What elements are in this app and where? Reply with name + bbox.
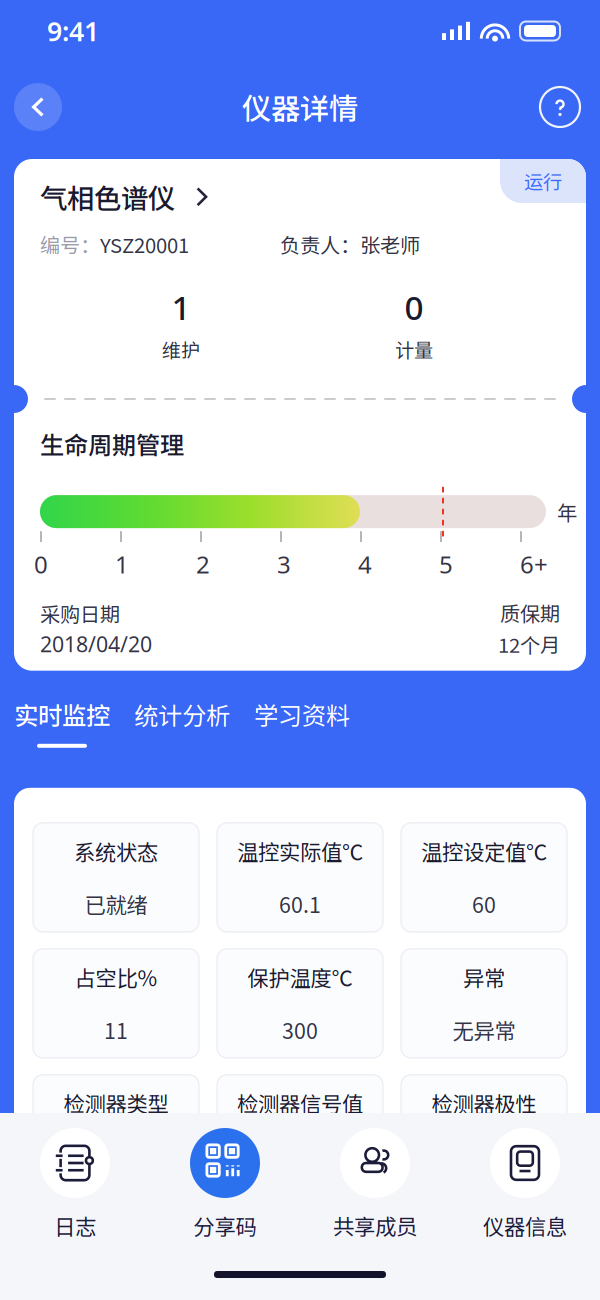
staticText: 占空比% [74, 961, 157, 992]
button[interactable]: 实时监控 [14, 697, 110, 748]
staticText: 仪器信息 [483, 1210, 567, 1241]
staticText: 系统状态 [74, 835, 158, 866]
staticText: 检测器极性 [431, 1087, 536, 1118]
staticText: 张老师 [360, 230, 420, 259]
button[interactable]: Help [538, 85, 582, 129]
staticText: 11 [104, 1014, 128, 1045]
staticText: 无异常 [452, 1014, 515, 1045]
staticText: 检测器类型 [63, 1087, 168, 1118]
button[interactable]: 日志 [0, 1128, 150, 1241]
button[interactable]: 共享成员 [300, 1128, 450, 1241]
staticText: 0 [34, 548, 48, 580]
staticText: 实时监控 [14, 697, 110, 732]
staticText: 统计分析 [134, 697, 230, 732]
staticText: 共享成员 [333, 1210, 417, 1241]
staticText: FID [99, 1140, 132, 1171]
button[interactable]: 气相色谱仪 [14, 177, 586, 217]
staticText: 温控实际值℃ [237, 835, 363, 866]
staticText: 运行 [524, 167, 562, 195]
staticText: 6+ [520, 548, 548, 580]
staticText: 3 [277, 548, 291, 580]
staticText: 采购日期 [40, 598, 120, 628]
staticText: 维护 [162, 335, 200, 363]
staticText: 0 [404, 285, 423, 329]
staticText: 4 [358, 548, 372, 580]
staticText: 编号： [40, 230, 100, 259]
button[interactable]: 仪器信息 [450, 1128, 600, 1241]
button[interactable]: 分享码 [150, 1128, 300, 1241]
staticText: 2018/04/20 [40, 630, 152, 658]
staticText: 保护温度℃ [247, 961, 352, 992]
staticText: 异常 [463, 961, 505, 992]
staticText: 9:41 [47, 13, 99, 49]
button[interactable]: 学习资料 [230, 697, 350, 732]
staticText: 生命周期管理 [40, 426, 184, 461]
button[interactable]: Back [14, 83, 62, 131]
staticText: 1 [171, 285, 190, 329]
staticText: 温控设定值℃ [421, 835, 547, 866]
staticText: 已就绪 [84, 888, 147, 919]
staticText: 分享码 [193, 1210, 256, 1241]
staticText: YSZ20001 [100, 230, 189, 259]
button[interactable]: 统计分析 [110, 697, 230, 732]
staticText: 日志 [54, 1210, 96, 1241]
staticText: 检测器信号值 [237, 1087, 363, 1118]
staticText: 质保期 [500, 598, 560, 627]
staticText: 300 [282, 1014, 318, 1045]
staticText: 60 [472, 888, 496, 919]
staticText: 气相色谱仪 [40, 177, 175, 217]
staticText: 年 [557, 497, 577, 526]
staticText: 1 [115, 548, 129, 580]
staticText: 负责人： [280, 230, 360, 259]
staticText: 2 [196, 548, 210, 580]
staticText: 正 [473, 1140, 494, 1171]
staticText: 仪器详情 [242, 86, 358, 128]
staticText: 计量 [395, 335, 433, 363]
staticText: 60.1 [279, 888, 321, 919]
staticText: 12个月 [498, 629, 560, 659]
staticText: 5 [439, 548, 453, 580]
staticText: 学习资料 [254, 697, 350, 732]
